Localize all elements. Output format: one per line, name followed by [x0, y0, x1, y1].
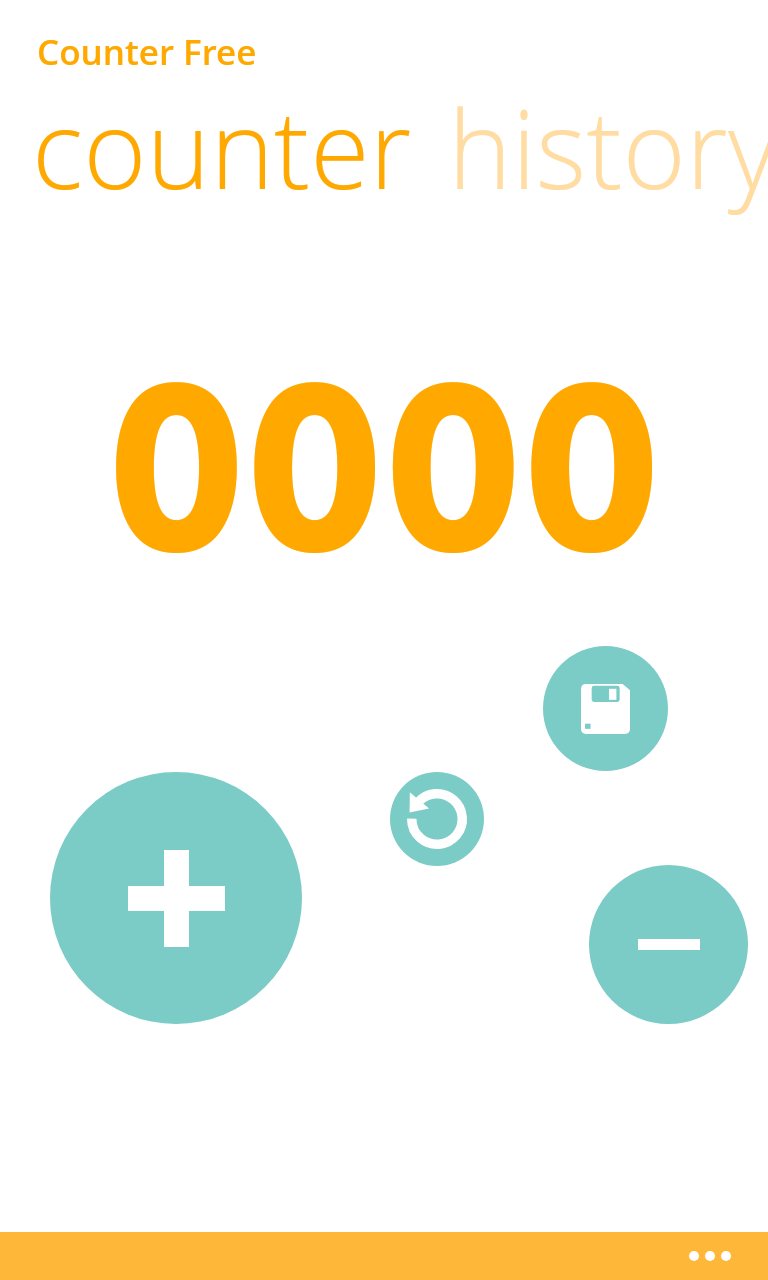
button[interactable]: Reset	[390, 772, 484, 866]
staticText: 0000	[0, 284, 768, 689]
button[interactable]: Save	[543, 646, 668, 771]
button[interactable]: More options	[0, 1232, 768, 1280]
button[interactable]: Increment	[50, 772, 302, 1024]
staticText: Counter Free	[37, 28, 257, 76]
button[interactable]: Decrement	[589, 865, 748, 1024]
button[interactable]: history	[448, 74, 768, 221]
button[interactable]: counter	[32, 74, 412, 221]
